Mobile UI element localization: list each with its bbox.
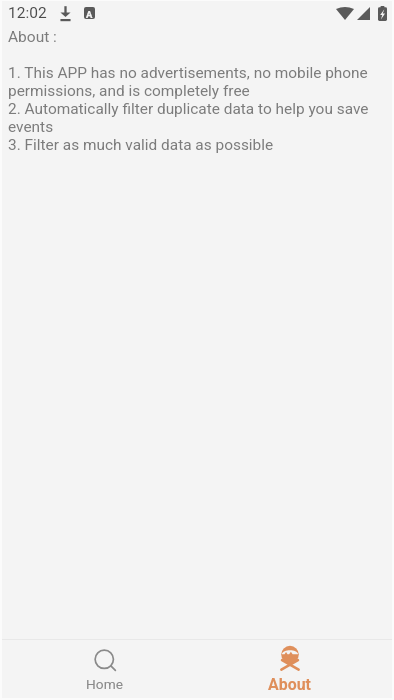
staticText: About [8, 28, 50, 46]
staticText: A [86, 9, 93, 19]
button[interactable]: Home [0, 640, 197, 700]
button[interactable]: About [197, 640, 394, 700]
staticText: : [53, 28, 57, 46]
staticText: 12:02 [8, 4, 47, 22]
staticText: 1. This APP has no advertisements, no mo… [8, 64, 386, 154]
staticText: About [268, 675, 311, 694]
staticText: Home [86, 676, 123, 692]
